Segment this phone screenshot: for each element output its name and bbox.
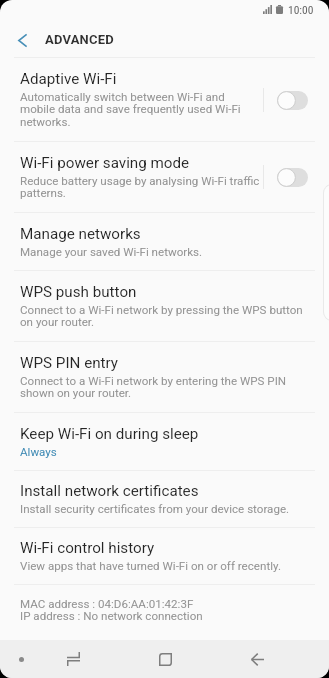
button[interactable]: Toggle Adaptive Wi-Fi <box>270 80 314 120</box>
button[interactable]: Keep Wi-Fi on during sleep <box>0 413 329 470</box>
staticText: 10:00 <box>288 3 314 16</box>
staticText: Reduce battery usage by analysing Wi-Fi … <box>20 174 260 200</box>
button[interactable]: Recent apps <box>27 640 119 678</box>
staticText: Wi-Fi power saving mode <box>20 154 190 172</box>
button[interactable]: Toggle Wi-Fi power saving mode <box>270 157 314 197</box>
staticText: Wi-Fi control history <box>20 539 155 557</box>
button[interactable]: Wi-Fi control history <box>0 528 329 584</box>
button[interactable]: Home <box>119 640 211 678</box>
staticText: Automatically switch between Wi-Fi and m… <box>20 90 241 129</box>
staticText: Manage networks <box>20 225 141 243</box>
staticText: WPS push button <box>20 283 137 301</box>
staticText: Adaptive Wi-Fi <box>20 70 117 88</box>
staticText: Install network certificates <box>20 482 199 500</box>
button[interactable]: WPS PIN entry <box>0 342 329 412</box>
staticText: View apps that have turned Wi-Fi on or o… <box>20 559 281 573</box>
staticText: Connect to a Wi-Fi network by pressing t… <box>20 303 303 329</box>
button[interactable]: Navigate up <box>5 23 39 57</box>
staticText: ADVANCED <box>45 32 114 47</box>
staticText: Install security certificates from your … <box>20 502 290 516</box>
staticText: Always <box>20 445 57 459</box>
button[interactable]: Adaptive Wi-Fi <box>0 58 329 141</box>
staticText: Manage your saved Wi-Fi networks. <box>20 245 203 259</box>
staticText: Keep Wi-Fi on during sleep <box>20 425 199 443</box>
staticText: MAC address : 04:D6:AA:01:42:3F IP addre… <box>20 597 203 623</box>
button[interactable]: WPS push button <box>0 271 329 341</box>
button[interactable]: Back <box>211 640 303 678</box>
button[interactable]: Wi-Fi power saving mode <box>0 142 329 212</box>
staticText: Connect to a Wi-Fi network by entering t… <box>20 374 287 400</box>
button[interactable]: Manage networks <box>0 213 329 270</box>
button[interactable]: Install network certificates <box>0 471 329 527</box>
staticText: WPS PIN entry <box>20 354 119 372</box>
